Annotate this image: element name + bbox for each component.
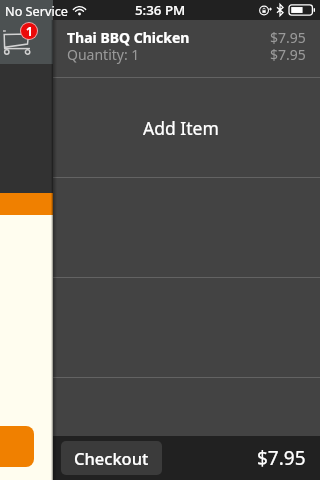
staticText: Thai BBQ Chicken	[67, 28, 190, 47]
staticText: 1	[26, 23, 33, 39]
button[interactable]: Add Item	[53, 78, 320, 177]
staticText: $7.95	[270, 28, 306, 47]
button[interactable]: Checkout	[61, 441, 162, 475]
staticText: Quantity: 1	[67, 45, 140, 64]
staticText: $7.95	[257, 445, 306, 471]
staticText: No Service	[5, 2, 68, 19]
button[interactable]: Thai BBQ Chicken	[53, 20, 320, 77]
button[interactable]: Order	[0, 426, 34, 467]
staticText: $7.95	[270, 45, 306, 64]
staticText: 5:36 PM	[135, 1, 186, 19]
staticText: Add Item	[143, 116, 219, 140]
staticText: Checkout	[74, 447, 149, 469]
button[interactable]: Cart	[1, 26, 45, 58]
